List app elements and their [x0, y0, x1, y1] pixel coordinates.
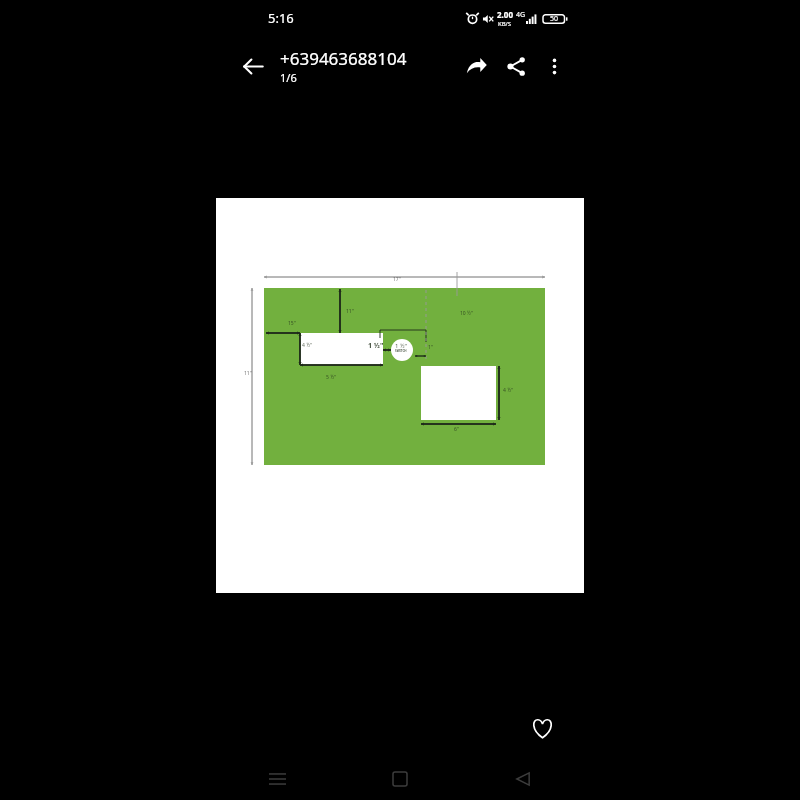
- staticText: 15": [288, 320, 296, 327]
- button[interactable]: Back: [234, 47, 272, 85]
- button[interactable]: Favorite: [520, 706, 564, 750]
- staticText: 5 ½": [326, 374, 337, 381]
- staticText: 1/6: [280, 70, 297, 85]
- staticText: KB/S: [498, 20, 512, 28]
- staticText: 11": [346, 308, 354, 315]
- staticText: 11": [244, 370, 252, 377]
- staticText: 1": [428, 344, 433, 351]
- staticText: 2.00: [497, 9, 513, 20]
- button[interactable]: Back: [461, 758, 584, 800]
- staticText: +639463688104: [280, 47, 407, 70]
- staticText: 1 ½": [395, 342, 408, 350]
- staticText: 17": [393, 276, 401, 283]
- staticText: SWITCH: [395, 349, 407, 353]
- staticText: 5:16: [268, 9, 294, 27]
- button[interactable]: Home: [338, 758, 461, 800]
- button[interactable]: Share: [496, 46, 536, 86]
- staticText: 4 ½": [302, 342, 313, 349]
- staticText: 1 ½": [368, 341, 384, 351]
- staticText: 4 ½": [503, 387, 514, 394]
- staticText: 50: [550, 14, 559, 24]
- staticText: 6": [454, 426, 459, 433]
- button[interactable]: Forward: [456, 46, 496, 86]
- button[interactable]: Recent apps: [216, 758, 338, 800]
- staticText: 4G: [516, 10, 526, 20]
- button[interactable]: More options: [536, 48, 572, 84]
- staticText: 10 ½": [460, 310, 473, 317]
